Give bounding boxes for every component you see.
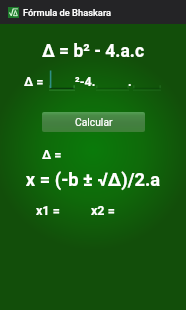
staticText: Calcular xyxy=(75,116,113,128)
staticText: Δ = xyxy=(42,147,62,162)
staticText: Δ = b² - 4.a.c xyxy=(0,41,186,62)
button[interactable]: Number input xyxy=(133,69,161,91)
button[interactable]: Calcular xyxy=(42,112,145,132)
staticText: x1 = xyxy=(36,203,60,218)
staticText: Fórmula de Bhaskara xyxy=(23,7,112,18)
staticText: ²-4. xyxy=(75,74,96,89)
button[interactable]: Number input xyxy=(96,69,129,91)
staticText: . xyxy=(128,74,132,89)
button[interactable]: Number input xyxy=(49,69,75,91)
staticText: x2 = xyxy=(91,203,115,218)
button[interactable]: Fórmula de Bhaskara xyxy=(0,0,186,24)
staticText: Δ = xyxy=(24,74,44,89)
staticText: x = (-b ± √Δ)/2.a xyxy=(0,169,186,190)
